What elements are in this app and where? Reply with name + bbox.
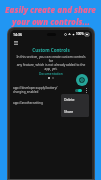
button[interactable]: Delete [61,96,89,103]
staticText: app://developer.supply/battery/ [13,86,58,90]
staticText: charging_enabled [13,90,39,94]
button[interactable]: app://another.setting [10,100,92,106]
staticText: 100% [76,32,84,36]
staticText: Share [64,109,74,114]
button[interactable]: Add control [76,74,88,86]
staticText: app://another.setting [13,101,43,105]
staticText: Documentation [39,72,63,76]
staticText: your own controls... [12,16,90,27]
staticText: 14:36 [13,32,22,37]
button[interactable]: Toggle control [74,88,83,93]
staticText: In this section, you can create custom c… [14,55,88,71]
staticText: Custom Controls [32,47,70,53]
staticText: Delete [64,97,75,102]
button[interactable]: app://developer.supply/battery/ [10,85,92,95]
button[interactable]: More options [84,88,89,93]
button[interactable]: Documentation [39,72,63,76]
button[interactable]: Open navigation menu [13,40,18,45]
button[interactable]: Share [61,108,89,115]
staticText: Easily create and share [5,4,96,15]
